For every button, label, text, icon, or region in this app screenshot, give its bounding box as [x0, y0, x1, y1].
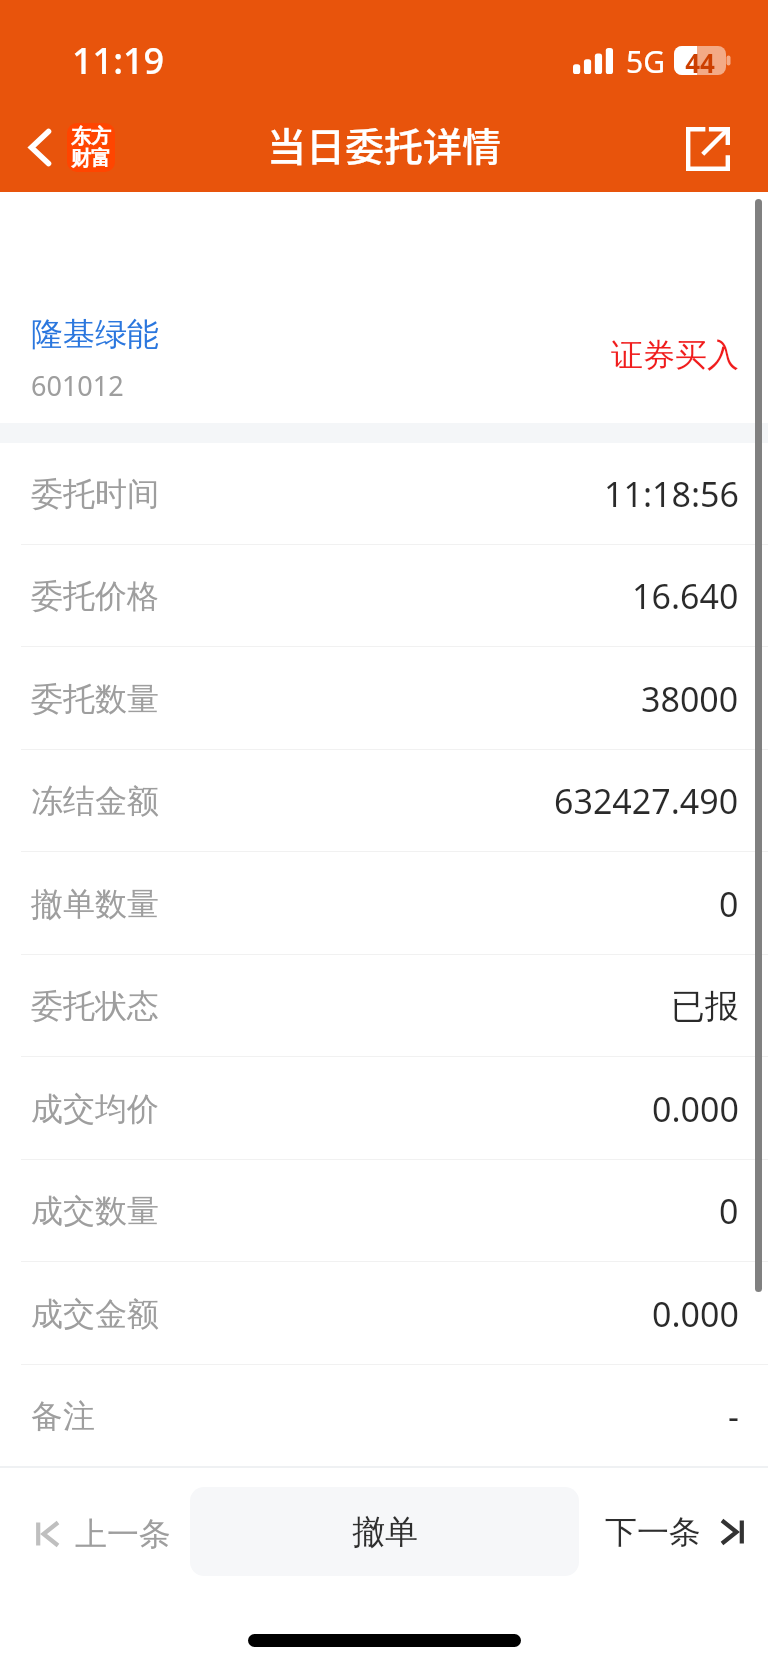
staticText: 0: [719, 1188, 739, 1234]
staticText: 601012: [31, 367, 124, 404]
staticText: 备注: [31, 1396, 95, 1436]
staticText: 632427.490: [554, 778, 739, 824]
staticText: 上一条: [75, 1514, 171, 1554]
button[interactable]: 成交金额: [0, 1263, 768, 1365]
staticText: 11:19: [72, 36, 165, 85]
staticText: 成交数量: [31, 1191, 159, 1231]
button[interactable]: 冻结金额: [0, 750, 768, 852]
staticText: 0.000: [652, 1086, 739, 1132]
button[interactable]: 成交均价: [0, 1058, 768, 1160]
staticText: 成交金额: [31, 1294, 159, 1334]
staticText: 冻结金额: [31, 781, 159, 821]
staticText: 证券买入: [611, 335, 739, 375]
staticText: 已报: [671, 985, 739, 1028]
staticText: 0.000: [652, 1291, 739, 1337]
staticText: 委托状态: [31, 986, 159, 1026]
button[interactable]: 上一条: [36, 1500, 171, 1568]
staticText: 下一条: [605, 1512, 701, 1552]
button[interactable]: 备注: [0, 1365, 768, 1467]
staticText: 撤单: [352, 1511, 418, 1553]
staticText: 隆基绿能: [31, 314, 159, 354]
button[interactable]: 委托价格: [0, 545, 768, 647]
staticText: 44: [674, 45, 726, 74]
staticText: 东方 财富: [71, 124, 111, 171]
button[interactable]: 委托状态: [0, 955, 768, 1057]
button[interactable]: 撤单: [190, 1487, 579, 1576]
staticText: 当日委托详情: [267, 116, 502, 172]
button[interactable]: East Money logo: [67, 123, 115, 172]
button[interactable]: 撤单数量: [0, 853, 768, 955]
button[interactable]: 委托时间: [0, 443, 768, 545]
staticText: 0: [719, 881, 739, 927]
button[interactable]: Back: [12, 125, 68, 169]
button[interactable]: Share: [676, 117, 740, 181]
button[interactable]: 成交数量: [0, 1160, 768, 1262]
staticText: 11:18:56: [604, 471, 739, 517]
staticText: 38000: [641, 676, 739, 722]
staticText: 委托时间: [31, 474, 159, 514]
staticText: 16.640: [632, 573, 739, 619]
button[interactable]: 委托数量: [0, 648, 768, 750]
staticText: 委托数量: [31, 679, 159, 719]
staticText: 撤单数量: [31, 884, 159, 924]
staticText: 成交均价: [31, 1089, 159, 1129]
staticText: -: [728, 1393, 739, 1439]
staticText: 5G: [626, 41, 665, 82]
staticText: 委托价格: [31, 576, 159, 616]
button[interactable]: 下一条: [605, 1498, 744, 1566]
